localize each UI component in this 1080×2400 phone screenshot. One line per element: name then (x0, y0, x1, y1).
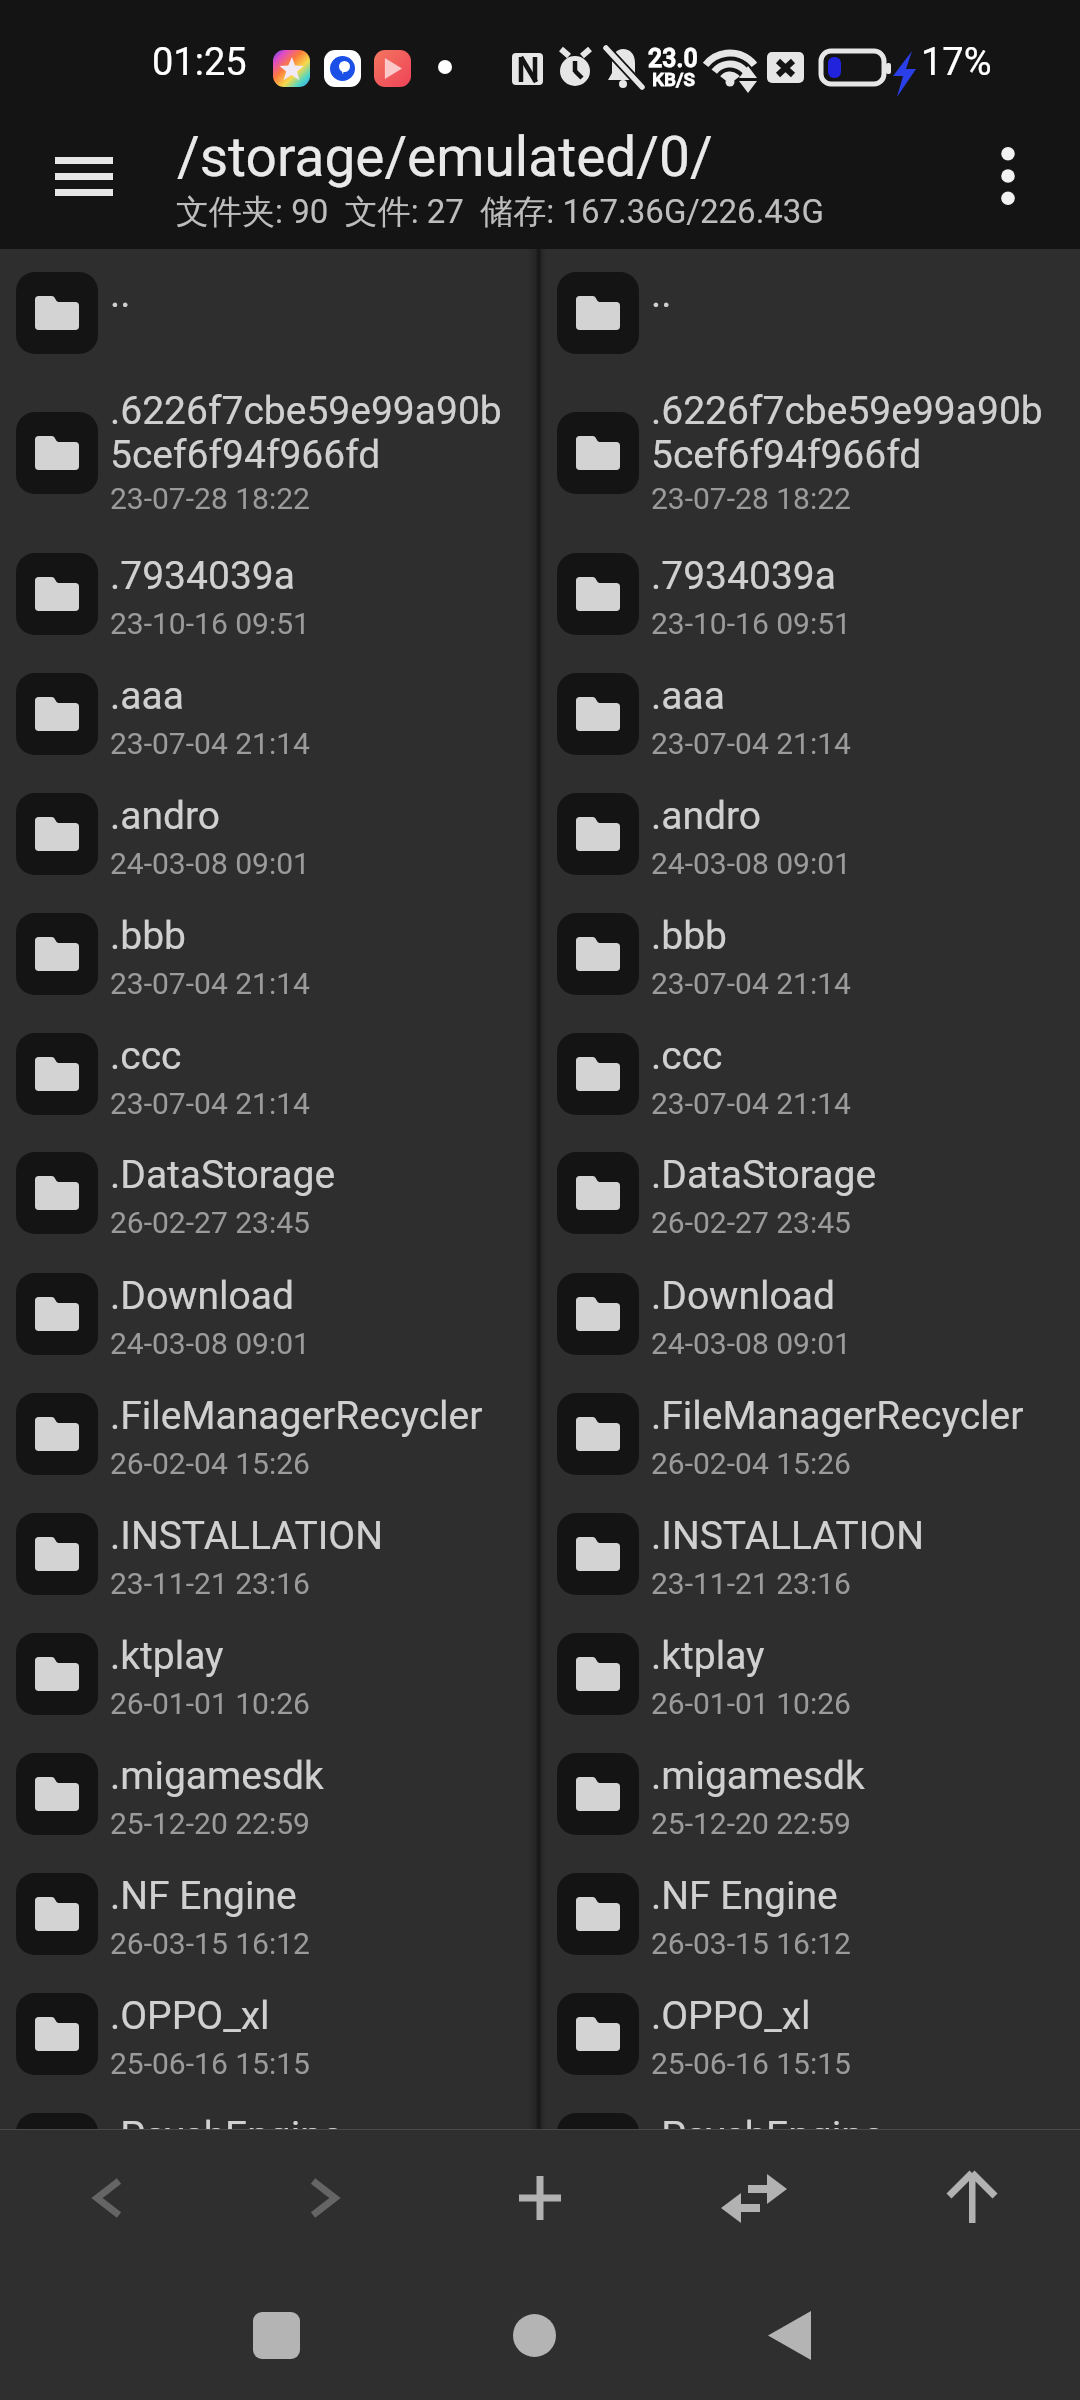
staticText: 23-11-21 23:16 (651, 1566, 851, 1601)
button[interactable]: .aaa (541, 654, 1080, 774)
staticText: .bbb (651, 913, 1063, 959)
button[interactable]: .6226f7cbe59e99a90b5cef6f94f966fd (541, 393, 1080, 560)
staticText: .FileManagerRecycler (651, 1393, 1063, 1439)
staticText: .DataStorage (110, 1152, 522, 1198)
staticText: 26-02-04 15:26 (110, 1446, 310, 1481)
staticText: .6226f7cbe59e99a90b5cef6f94f966fd (651, 388, 1063, 477)
staticText: 25-12-20 22:59 (651, 1806, 851, 1841)
staticText: 24-03-08 09:01 (110, 1326, 310, 1361)
button[interactable]: .Download (0, 1254, 528, 1374)
staticText: .7934039a (651, 553, 1063, 599)
staticText: 23-10-16 09:51 (651, 606, 851, 641)
button[interactable]: .bbb (0, 894, 528, 1014)
button[interactable]: Recent apps (216, 2270, 336, 2400)
staticText: .OPPO_xl (110, 1993, 522, 2039)
staticText: 26-01-01 10:26 (651, 1686, 851, 1721)
button[interactable]: .FileManagerRecycler (0, 1374, 528, 1494)
staticText: 24-03-08 09:01 (651, 846, 851, 881)
staticText: .ktplay (651, 1633, 1063, 1679)
staticText: .DataStorage (651, 1152, 1063, 1198)
button[interactable]: .7934039a (0, 534, 528, 654)
button[interactable]: Navigate forward (270, 2130, 378, 2270)
staticText: 26-01-01 10:26 (110, 1686, 310, 1721)
button[interactable]: Home (474, 2270, 594, 2400)
staticText: 26-02-04 15:26 (651, 1446, 851, 1481)
button[interactable]: .OPPO_xl (0, 1974, 528, 2094)
button[interactable]: Back (729, 2270, 849, 2400)
button[interactable]: .INSTALLATION (541, 1494, 1080, 1614)
staticText: .6226f7cbe59e99a90b5cef6f94f966fd (110, 388, 522, 477)
button[interactable]: Navigate back (54, 2130, 162, 2270)
button[interactable]: .ktplay (541, 1614, 1080, 1734)
staticText: .7934039a (110, 553, 522, 599)
staticText: 23-07-04 21:14 (110, 966, 310, 1001)
staticText: 23-07-28 18:22 (110, 481, 310, 516)
button[interactable]: .. (541, 253, 1080, 373)
button[interactable]: .INSTALLATION (0, 1494, 528, 1614)
button[interactable]: .bbb (541, 894, 1080, 1014)
staticText: .ccc (651, 1033, 1063, 1079)
staticText: .PsychEngine (110, 2113, 522, 2130)
staticText: 26-02-27 23:45 (110, 1205, 310, 1240)
staticText: 17% (921, 40, 992, 85)
button[interactable]: .Download (541, 1254, 1080, 1374)
staticText: .migamesdk (110, 1753, 522, 1799)
button[interactable]: .7934039a (541, 534, 1080, 654)
staticText: .NF Engine (651, 1873, 1063, 1919)
staticText: .Download (651, 1273, 1063, 1319)
staticText: .ktplay (110, 1633, 522, 1679)
button[interactable]: .DataStorage (0, 1133, 528, 1253)
button[interactable]: .PsychEngine (541, 2094, 1080, 2130)
staticText: .INSTALLATION (651, 1513, 1063, 1559)
staticText: .aaa (651, 673, 1063, 719)
staticText: 26-03-15 16:12 (651, 1926, 851, 1961)
staticText: 25-06-16 15:15 (110, 2046, 310, 2081)
staticText: 23-07-04 21:14 (651, 726, 851, 761)
button[interactable]: Swap panes (700, 2130, 808, 2270)
button[interactable]: .migamesdk (0, 1734, 528, 1854)
button[interactable]: Menu (28, 132, 140, 220)
staticText: 23-07-28 18:22 (651, 481, 851, 516)
button[interactable]: .ccc (541, 1014, 1080, 1134)
staticText: .FileManagerRecycler (110, 1393, 522, 1439)
button[interactable]: .NF Engine (0, 1854, 528, 1974)
staticText: 25-06-16 15:15 (651, 2046, 851, 2081)
staticText: 23.0 (648, 44, 698, 73)
staticText: .aaa (110, 673, 522, 719)
staticText: 23-10-16 09:51 (110, 606, 310, 641)
button[interactable]: .DataStorage (541, 1133, 1080, 1253)
button[interactable]: .NF Engine (541, 1854, 1080, 1974)
button[interactable]: .6226f7cbe59e99a90b5cef6f94f966fd (0, 393, 528, 560)
staticText: .PsychEngine (651, 2113, 1063, 2130)
button[interactable]: .ccc (0, 1014, 528, 1134)
staticText: .ccc (110, 1033, 522, 1079)
staticText: .andro (110, 793, 522, 839)
staticText: 23-11-21 23:16 (110, 1566, 310, 1601)
button[interactable]: More options (962, 128, 1054, 224)
button[interactable]: .ktplay (0, 1614, 528, 1734)
button[interactable]: Go to parent folder (918, 2130, 1026, 2270)
button[interactable]: .PsychEngine (0, 2094, 528, 2130)
staticText: 23-07-04 21:14 (651, 966, 851, 1001)
button[interactable]: .andro (541, 774, 1080, 894)
staticText: 文件夹: 90 文件: 27 储存: 167.36G/226.43G (176, 191, 824, 233)
staticText: .INSTALLATION (110, 1513, 522, 1559)
staticText: 23-07-04 21:14 (651, 1086, 851, 1121)
button[interactable]: .andro (0, 774, 528, 894)
button[interactable]: .OPPO_xl (541, 1974, 1080, 2094)
button[interactable]: .FileManagerRecycler (541, 1374, 1080, 1494)
button[interactable]: New folder (486, 2130, 594, 2270)
staticText: .. (651, 271, 672, 317)
staticText: /storage/emulated/0/ (177, 125, 713, 189)
staticText: .andro (651, 793, 1063, 839)
staticText: .Download (110, 1273, 522, 1319)
button[interactable]: .. (0, 253, 528, 373)
staticText: 01:25 (152, 40, 247, 85)
staticText: 23-07-04 21:14 (110, 726, 310, 761)
staticText: 26-03-15 16:12 (110, 1926, 310, 1961)
staticText: 24-03-08 09:01 (110, 846, 310, 881)
staticText: .bbb (110, 913, 522, 959)
button[interactable]: .migamesdk (541, 1734, 1080, 1854)
button[interactable]: .aaa (0, 654, 528, 774)
staticText: .NF Engine (110, 1873, 522, 1919)
